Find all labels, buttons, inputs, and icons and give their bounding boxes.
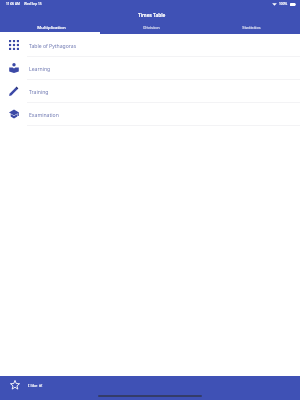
staticText: Statistics (242, 24, 261, 30)
staticText: Times Table (138, 12, 166, 19)
button[interactable]: Division (100, 23, 200, 32)
staticText: Wed Sep 15 (24, 2, 42, 6)
button[interactable]: Table of Pythagoras (0, 34, 300, 56)
staticText: Multiplication (37, 24, 66, 30)
staticText: 100% (279, 2, 288, 6)
staticText: Training (29, 89, 49, 96)
button[interactable]: I like it! (0, 376, 300, 394)
button[interactable]: Multiplication (0, 23, 100, 32)
staticText: Examination (29, 112, 59, 119)
button[interactable]: Learning (0, 57, 300, 79)
button[interactable]: Statistics (200, 23, 300, 32)
staticText: 11:06 AM (6, 2, 21, 6)
staticText: I like it! (28, 382, 43, 388)
button[interactable]: Examination (0, 103, 300, 125)
staticText: Table of Pythagoras (29, 43, 77, 50)
staticText: Learning (29, 66, 51, 73)
staticText: Division (143, 24, 160, 30)
button[interactable]: Training (0, 80, 300, 102)
